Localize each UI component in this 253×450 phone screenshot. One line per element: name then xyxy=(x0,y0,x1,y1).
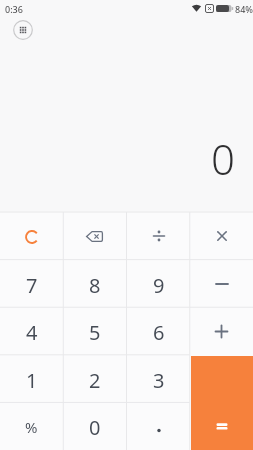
button[interactable]: 2 xyxy=(63,355,126,403)
staticText: 3 xyxy=(153,367,165,394)
staticText: 0 xyxy=(89,414,101,441)
staticText: 0:36 xyxy=(5,3,23,15)
button[interactable] xyxy=(0,212,63,260)
staticText: 84% xyxy=(235,3,253,15)
button[interactable] xyxy=(190,307,253,355)
staticText: % xyxy=(25,417,38,437)
staticText: 5 xyxy=(89,319,101,346)
staticText: 1 xyxy=(26,367,38,394)
button[interactable]: 1 xyxy=(0,355,63,403)
button[interactable]: 9 xyxy=(127,260,190,308)
button[interactable]: 0 xyxy=(63,402,126,450)
button[interactable] xyxy=(127,402,190,450)
button[interactable]: 8 xyxy=(63,260,126,308)
staticText: 8 xyxy=(89,272,101,299)
button[interactable] xyxy=(191,356,253,450)
button[interactable] xyxy=(190,260,253,308)
button[interactable] xyxy=(127,212,190,260)
button[interactable] xyxy=(63,212,126,260)
staticText: 7 xyxy=(26,272,38,299)
staticText: 9 xyxy=(153,272,165,299)
button[interactable] xyxy=(13,20,33,40)
button[interactable]: 6 xyxy=(127,307,190,355)
button[interactable]: % xyxy=(0,402,63,450)
staticText: 2 xyxy=(89,367,101,394)
button[interactable] xyxy=(190,212,253,260)
staticText: 6 xyxy=(153,319,165,346)
staticText: 0 xyxy=(211,130,235,180)
button[interactable]: 5 xyxy=(63,307,126,355)
button[interactable]: 3 xyxy=(127,355,190,403)
staticText: 4 xyxy=(26,319,38,346)
button[interactable]: 7 xyxy=(0,260,63,308)
button[interactable]: 4 xyxy=(0,307,63,355)
